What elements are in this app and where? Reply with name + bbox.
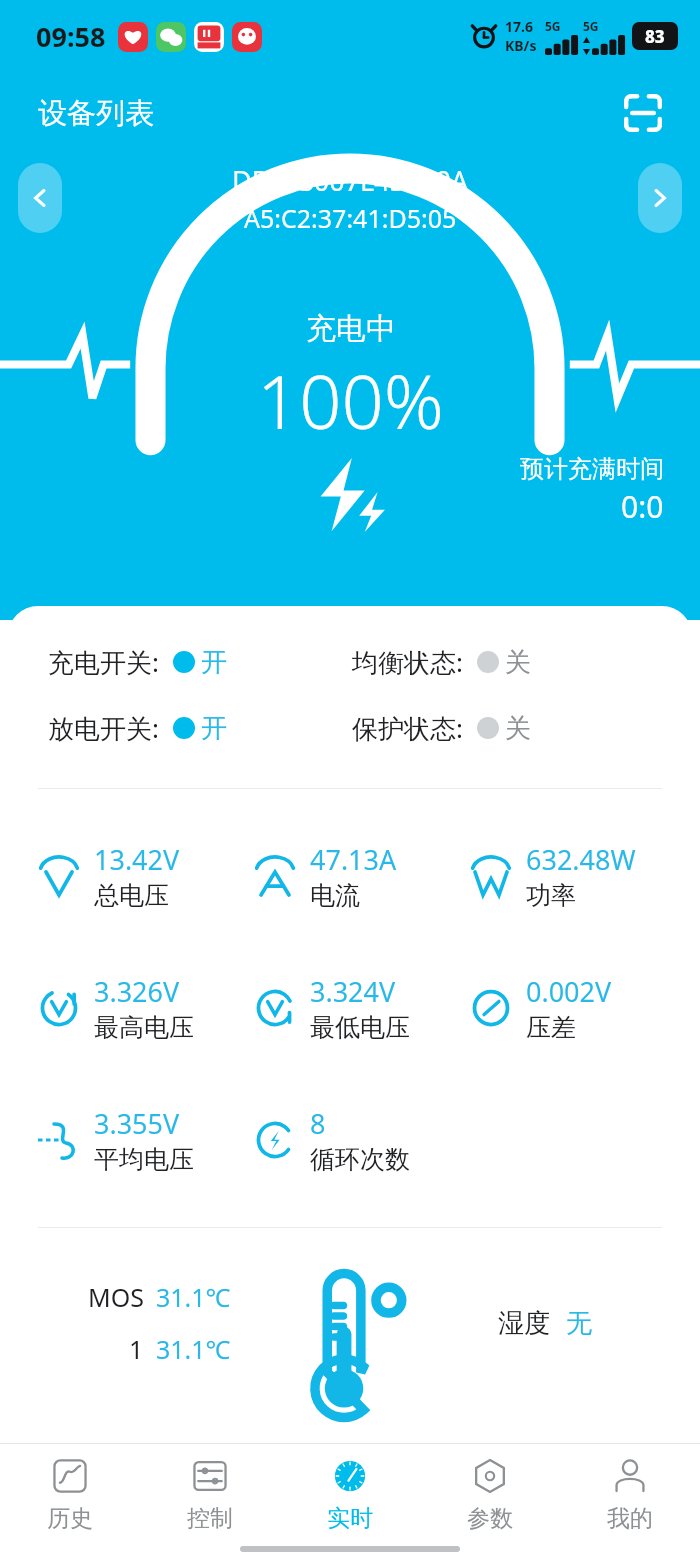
staticText: 632.48W	[526, 841, 636, 878]
button[interactable]: 632.48W	[466, 841, 636, 911]
staticText: MOS	[88, 1280, 144, 1314]
button[interactable]: 均衡状态:	[352, 644, 531, 680]
button[interactable]: 参数	[420, 1444, 560, 1543]
staticText: 预计充满时间	[520, 454, 664, 484]
staticText: 设备列表	[38, 95, 154, 132]
staticText: 31.1℃	[156, 1280, 231, 1314]
staticText: 1	[129, 1332, 144, 1366]
button[interactable]: 3.355V	[34, 1105, 194, 1175]
button[interactable]: 历史	[0, 1444, 140, 1543]
button[interactable]: 47.13A	[250, 841, 397, 911]
button[interactable]: 13.42V	[34, 841, 180, 911]
button[interactable]: 0.002V	[466, 973, 612, 1043]
staticText: 实时	[327, 1504, 373, 1533]
staticText: 0:0	[621, 486, 664, 527]
staticText: 5G	[583, 18, 599, 34]
staticText: 开	[201, 646, 227, 679]
staticText: 83	[645, 25, 665, 48]
staticText: 47.13A	[310, 841, 397, 878]
staticText: 100%	[257, 350, 444, 451]
staticText: 5G	[545, 18, 561, 34]
staticText: 参数	[467, 1504, 513, 1533]
staticText: 保护状态:	[352, 710, 463, 746]
staticText: 控制	[187, 1504, 233, 1533]
staticText: 开	[201, 712, 227, 745]
button[interactable]: 放电开关:	[48, 710, 227, 746]
staticText: 0.002V	[526, 973, 612, 1010]
button[interactable]: Next device	[638, 163, 682, 233]
staticText: 总电压	[94, 880, 169, 911]
button[interactable]: Previous device	[18, 163, 62, 233]
staticText: 功率	[526, 880, 576, 911]
staticText: 放电开关:	[48, 710, 159, 746]
staticText: 循环次数	[310, 1144, 410, 1175]
button[interactable]: Scan	[620, 90, 666, 136]
staticText: 3.355V	[94, 1105, 180, 1142]
button[interactable]: 控制	[140, 1444, 280, 1543]
button[interactable]: 3.326V	[34, 973, 194, 1043]
staticText: KB/s	[505, 36, 537, 55]
staticText: 充电开关:	[48, 644, 159, 680]
button[interactable]: 8	[250, 1105, 410, 1175]
staticText: A5:C2:37:41:D5:05	[244, 201, 457, 235]
staticText: 最高电压	[94, 1012, 194, 1043]
staticText: 最低电压	[310, 1012, 410, 1043]
staticText: 13.42V	[94, 841, 180, 878]
staticText: 关	[505, 712, 531, 745]
staticText: 3.326V	[94, 973, 180, 1010]
staticText: 我的	[607, 1504, 653, 1533]
staticText: 3.324V	[310, 973, 396, 1010]
staticText: 平均电压	[94, 1144, 194, 1175]
staticText: 历史	[47, 1504, 93, 1533]
staticText: 均衡状态:	[352, 644, 463, 680]
staticText: DP04S007L4S200A	[232, 162, 469, 199]
staticText: 无	[566, 1307, 592, 1340]
button[interactable]: 实时	[280, 1444, 420, 1543]
staticText: 充电中	[306, 310, 396, 348]
button[interactable]: 我的	[560, 1444, 700, 1543]
button[interactable]: 充电开关:	[48, 644, 227, 680]
staticText: 压差	[526, 1012, 576, 1043]
button[interactable]: 3.324V	[250, 973, 410, 1043]
staticText: 8	[310, 1105, 326, 1142]
staticText: 31.1℃	[156, 1332, 231, 1366]
staticText: 09:58	[36, 18, 106, 55]
staticText: 电流	[310, 880, 360, 911]
staticText: 湿度	[498, 1307, 550, 1340]
button[interactable]: 保护状态:	[352, 710, 531, 746]
staticText: 关	[505, 646, 531, 679]
staticText: 17.6	[505, 17, 533, 36]
